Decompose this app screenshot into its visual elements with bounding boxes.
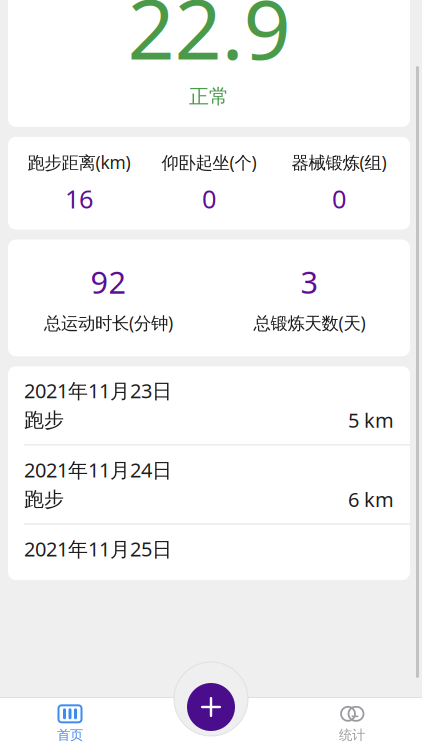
staticText: 5 km [348, 407, 394, 433]
staticText: 2021年11月23日 [24, 377, 172, 404]
button[interactable]: 统计 [292, 697, 412, 750]
staticText: 92 [90, 261, 126, 302]
staticText: 跑步 [24, 487, 64, 511]
staticText: 3 [300, 261, 318, 302]
staticText: 跑步距离(km) [27, 151, 130, 174]
staticText: 6 km [348, 486, 394, 512]
staticText: 16 [65, 182, 93, 215]
staticText: 2021年11月24日 [24, 456, 172, 483]
staticText: 器械锻炼(组) [291, 151, 386, 174]
staticText: 0 [202, 182, 216, 215]
staticText: 2021年11月25日 [24, 535, 172, 562]
staticText: 仰卧起坐(个) [161, 151, 256, 174]
button[interactable]: 2021年11月24日 [8, 445, 410, 523]
staticText: 总运动时长(分钟) [44, 311, 173, 334]
staticText: 统计 [339, 727, 365, 743]
button[interactable]: 首页 [10, 697, 130, 750]
staticText: 正常 [189, 84, 229, 109]
staticText: 跑步 [24, 408, 64, 432]
staticText: 总锻炼天数(天) [253, 311, 365, 334]
button[interactable]: Add record [183, 679, 239, 735]
staticText: 22.9 [127, 0, 290, 82]
button[interactable]: 2021年11月23日 [8, 366, 410, 444]
staticText: 首页 [57, 727, 83, 743]
staticText: 0 [332, 182, 346, 215]
